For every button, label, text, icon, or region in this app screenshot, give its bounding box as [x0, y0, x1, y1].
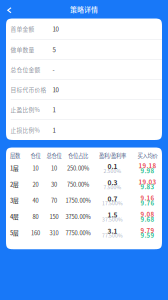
staticText: 2.500%	[103, 168, 121, 173]
staticText: 9.16	[140, 195, 154, 201]
staticText: 0.3	[107, 179, 117, 186]
staticText: 10	[51, 164, 57, 172]
staticText: 9.83	[140, 183, 154, 190]
staticText: 150	[49, 212, 58, 221]
staticText: 7750.00%	[65, 228, 90, 237]
staticText: 77.500%	[102, 233, 123, 238]
staticText: 17.500%	[102, 200, 123, 206]
staticText: 1	[53, 105, 56, 114]
staticText: 止盈比例%	[11, 105, 40, 114]
staticText: 3750.00%	[65, 212, 90, 221]
staticText: 70	[51, 196, 57, 204]
staticText: 仓位	[30, 152, 40, 159]
staticText: 2层	[10, 180, 19, 188]
staticText: 目标代币价格	[11, 85, 47, 94]
staticText: 310	[49, 228, 58, 237]
staticText: 策略详情	[70, 4, 98, 14]
staticText: 5	[53, 45, 56, 54]
staticText: 9.76	[140, 200, 154, 206]
staticText: 3.1	[107, 227, 117, 234]
staticText: 9.08	[140, 211, 154, 217]
staticText: 止损比例%	[11, 126, 40, 134]
staticText: 250.00%	[67, 164, 89, 172]
staticText: 5层	[10, 228, 19, 237]
staticText: 1.5	[107, 211, 117, 218]
staticText: 30	[51, 180, 57, 188]
staticText: 1	[53, 126, 56, 134]
staticText: 10	[53, 24, 59, 33]
staticText: 9.59	[140, 232, 154, 238]
staticText: 总仓位	[46, 152, 61, 159]
staticText: 仓位占比	[68, 152, 88, 159]
staticText: 盈利/盈利率	[99, 152, 126, 159]
staticText: -	[53, 65, 55, 74]
staticText: 买入均价	[137, 152, 157, 159]
staticText: 37.500%	[102, 217, 123, 222]
staticText: 4层	[10, 212, 19, 221]
staticText: 19.18	[138, 162, 156, 169]
staticText: 19.03	[138, 179, 156, 185]
staticText: 首单金额	[11, 25, 35, 33]
staticText: 0.1	[107, 163, 117, 170]
staticText: 1层	[10, 164, 19, 172]
staticText: 20	[32, 180, 38, 188]
staticText: 160	[31, 228, 40, 237]
staticText: 0.7	[107, 195, 117, 202]
staticText: 1750.00%	[65, 196, 90, 204]
staticText: 40	[32, 196, 38, 204]
staticText: 9.68	[140, 216, 154, 222]
staticText: 3层	[10, 196, 19, 204]
staticText: 9.98	[140, 167, 154, 174]
staticText: 总仓位金额	[11, 65, 41, 74]
staticText: 10	[32, 164, 38, 172]
button[interactable]: Back	[0, 0, 18, 18]
staticText: 10	[53, 85, 59, 94]
staticText: 9.79	[140, 227, 154, 233]
staticText: 7.500%	[103, 184, 121, 190]
staticText: 层数	[10, 152, 20, 159]
staticText: 80	[32, 212, 38, 221]
staticText: 做单数量	[11, 45, 35, 54]
staticText: 750.00%	[67, 180, 89, 188]
